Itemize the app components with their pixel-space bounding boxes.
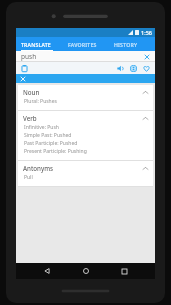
button[interactable]: Noun [18,85,153,98]
staticText: Antonyms [23,164,54,172]
button[interactable]: HISTORY [109,37,155,51]
button[interactable]: push [16,51,155,62]
button[interactable]: Speak [116,64,125,73]
staticText: TRANSLATE [21,41,51,48]
button[interactable]: FAVORITES [63,37,109,51]
staticText: Present Participle: Pushing [24,148,87,155]
other: Close result [20,76,26,82]
button[interactable]: TRANSLATE [16,37,63,51]
staticText: Noun [23,88,40,96]
staticText: Infinitive: Push [24,124,59,131]
staticText: Pull [24,174,33,181]
staticText: Simple Past: Pushed [24,132,72,139]
button[interactable]: Translate online [129,64,138,73]
staticText: Past Participle: Pushed [24,140,78,147]
staticText: push [21,52,37,61]
button[interactable]: Antonyms [18,161,153,174]
staticText: Verb [23,114,37,122]
button[interactable]: Back [40,264,54,278]
button[interactable]: Add to favorites [142,64,151,73]
staticText: HISTORY [114,41,138,48]
button[interactable]: Clear [143,53,150,60]
staticText: Plural: Pushes [24,98,57,105]
staticText: FAVORITES [68,41,97,48]
button[interactable]: Home [79,264,93,278]
button[interactable]: Close result [16,74,155,83]
button[interactable]: Recents [117,264,131,278]
staticText: 1:56 [141,29,152,36]
button[interactable]: Paste from clipboard [20,64,29,73]
button[interactable]: Verb [18,111,153,124]
